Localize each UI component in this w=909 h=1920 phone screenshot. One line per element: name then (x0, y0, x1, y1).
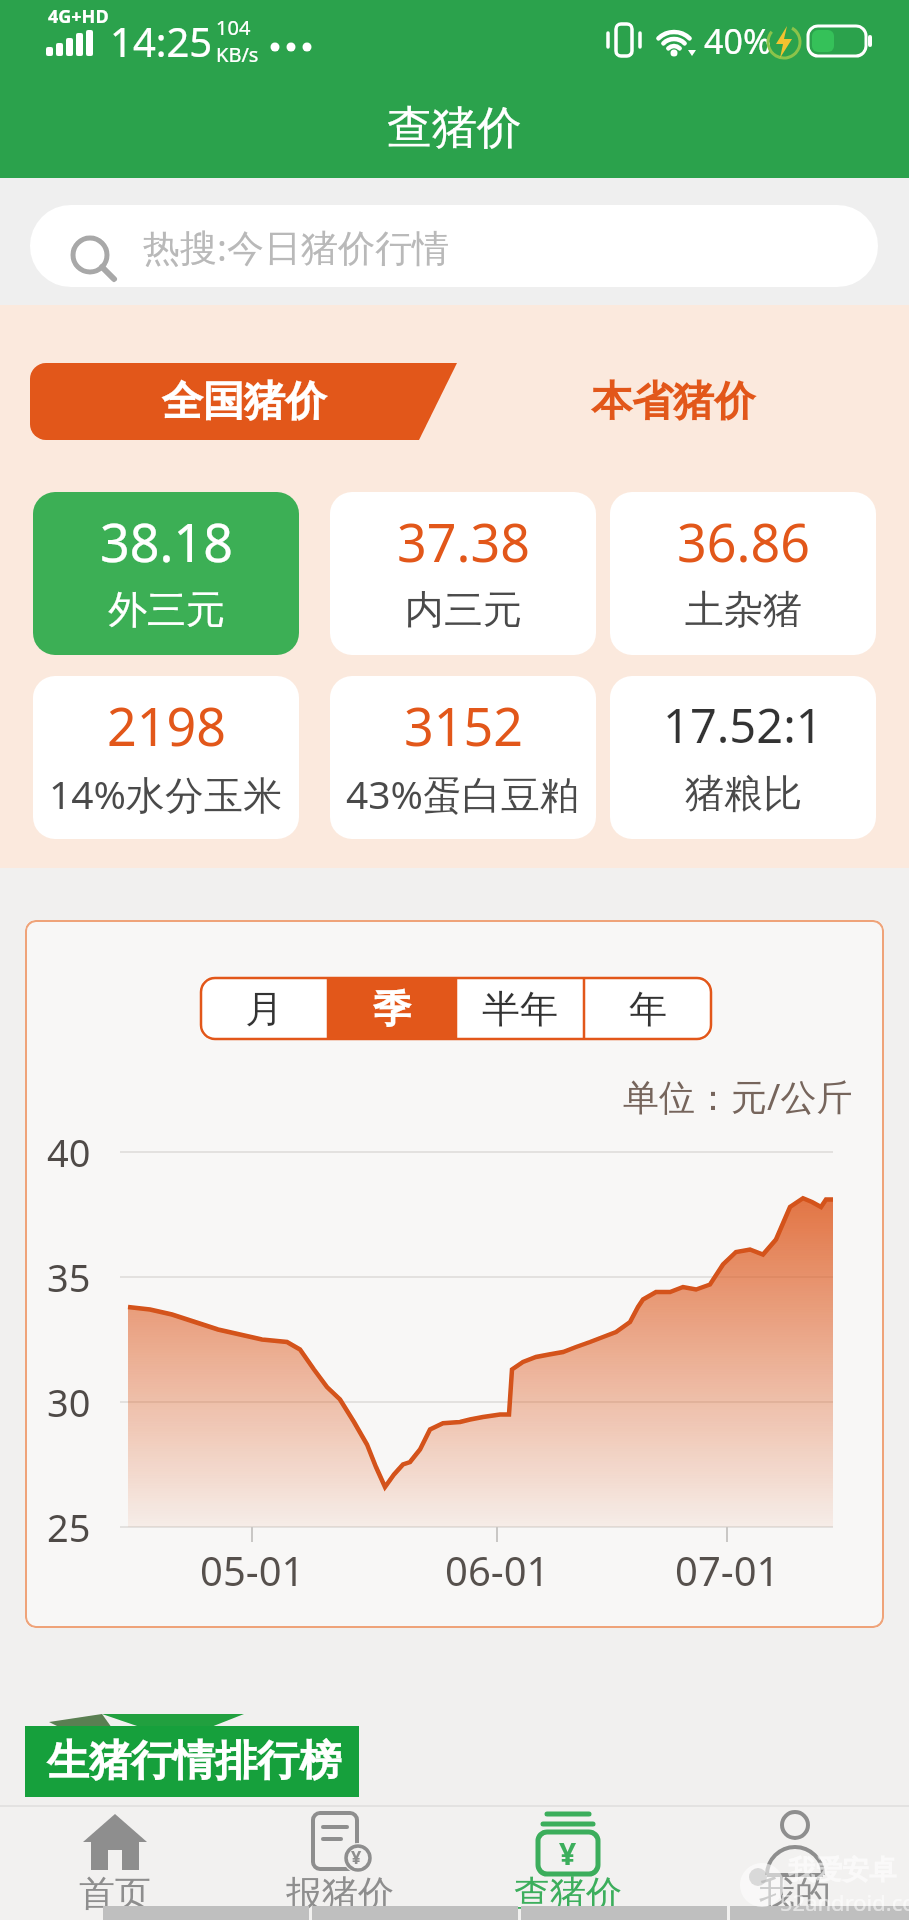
button[interactable]: 生猪行情排行榜 (25, 1726, 359, 1797)
button[interactable]: 半年 (456, 977, 584, 1040)
button[interactable]: 3152 (330, 676, 596, 839)
staticText: 38.18 (100, 506, 233, 576)
button[interactable]: 本省猪价 (460, 363, 885, 440)
staticText: 40 (47, 1126, 91, 1178)
staticText: 热搜:今日猪价行情 (143, 221, 449, 272)
staticText: 季 (373, 985, 411, 1033)
button[interactable]: ¥ (240, 1805, 440, 1917)
staticText: 30 (47, 1376, 91, 1428)
staticText: 104 (216, 14, 251, 41)
staticText: 52android.com (780, 1887, 909, 1917)
button[interactable]: 月 (200, 977, 328, 1040)
staticText: 07-01 (675, 1543, 780, 1597)
button[interactable]: 季 (328, 977, 456, 1040)
staticText: 06-01 (445, 1543, 550, 1597)
staticText: 半年 (482, 985, 558, 1033)
staticText: 25 (47, 1501, 91, 1553)
staticText: 内三元 (405, 585, 522, 634)
staticText: 全国猪价 (162, 376, 326, 428)
staticText: 我的 (759, 1871, 831, 1915)
staticText: 我爱安卓 (788, 1853, 896, 1887)
staticText: 43%蛋白豆粕 (346, 767, 580, 820)
staticText: ¥ (351, 1845, 362, 1870)
staticText: 土杂猪 (685, 585, 802, 634)
staticText: 37.38 (397, 506, 530, 576)
staticText: 首页 (79, 1871, 151, 1915)
staticText: 3152 (404, 690, 523, 760)
staticText: 报猪价 (286, 1871, 394, 1915)
button[interactable]: 热搜:今日猪价行情 (30, 205, 878, 287)
staticText: 05-01 (200, 1543, 305, 1597)
button[interactable]: 36.86 (610, 492, 876, 655)
button[interactable]: ¥ (468, 1805, 668, 1917)
staticText: 月 (245, 985, 283, 1033)
button[interactable]: 首页 (15, 1805, 215, 1917)
button[interactable]: 37.38 (330, 492, 596, 655)
staticText: 外三元 (108, 585, 225, 634)
staticText: ¥ (559, 1833, 577, 1874)
staticText: 35 (47, 1251, 91, 1303)
staticText: 14%水分玉米 (49, 767, 283, 820)
staticText: 17.52:1 (663, 693, 823, 757)
staticText: 36.86 (677, 506, 810, 576)
staticText: 2198 (107, 690, 226, 760)
button[interactable]: 38.18 (33, 492, 299, 655)
button[interactable]: 2198 (33, 676, 299, 839)
staticText: 40% (704, 18, 772, 64)
button[interactable]: 全国猪价 (30, 363, 457, 440)
staticText: 4G+HD (48, 4, 109, 29)
staticText: 14:25 (110, 14, 213, 68)
staticText: 年 (629, 985, 667, 1033)
staticText: 查猪价 (514, 1871, 622, 1915)
button[interactable]: 我的 (695, 1805, 895, 1917)
staticText: 猪粮比 (685, 769, 802, 818)
staticText: 单位：元/公斤 (623, 1072, 853, 1121)
button[interactable]: 17.52:1 (610, 676, 876, 839)
staticText: KB/s (216, 41, 259, 68)
staticText: 查猪价 (387, 100, 522, 157)
staticText: 本省猪价 (591, 376, 755, 428)
button[interactable]: 年 (584, 977, 712, 1040)
staticText: 生猪行情排行榜 (47, 1735, 341, 1788)
